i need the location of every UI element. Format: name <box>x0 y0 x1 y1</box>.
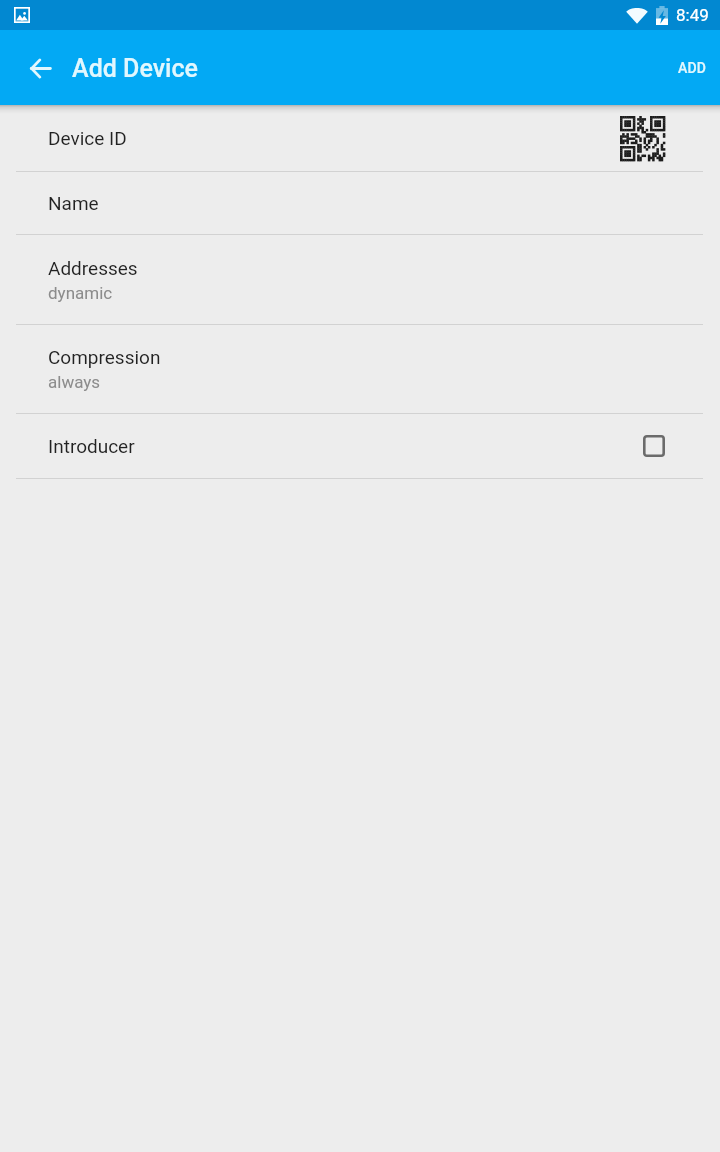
button[interactable]: Scan QR code <box>620 116 665 161</box>
staticText: dynamic <box>48 283 113 303</box>
button[interactable]: Introducer checkbox <box>643 435 665 457</box>
button[interactable]: Addresses <box>0 235 720 324</box>
button[interactable]: Introducer <box>0 414 720 478</box>
staticText: Compression <box>48 346 161 368</box>
staticText: Device ID <box>48 127 127 149</box>
button[interactable]: ADD <box>665 46 720 90</box>
staticText: always <box>48 372 101 392</box>
button[interactable]: Name <box>0 172 720 234</box>
staticText: Addresses <box>48 257 138 279</box>
staticText: Introducer <box>48 435 135 457</box>
staticText: 8:49 <box>676 5 709 25</box>
button[interactable]: Device ID <box>0 105 720 171</box>
button[interactable]: Compression <box>0 325 720 413</box>
button[interactable]: Navigate up <box>16 44 64 92</box>
staticText: ADD <box>678 60 707 76</box>
staticText: Add Device <box>72 54 198 83</box>
staticText: Name <box>48 192 99 214</box>
